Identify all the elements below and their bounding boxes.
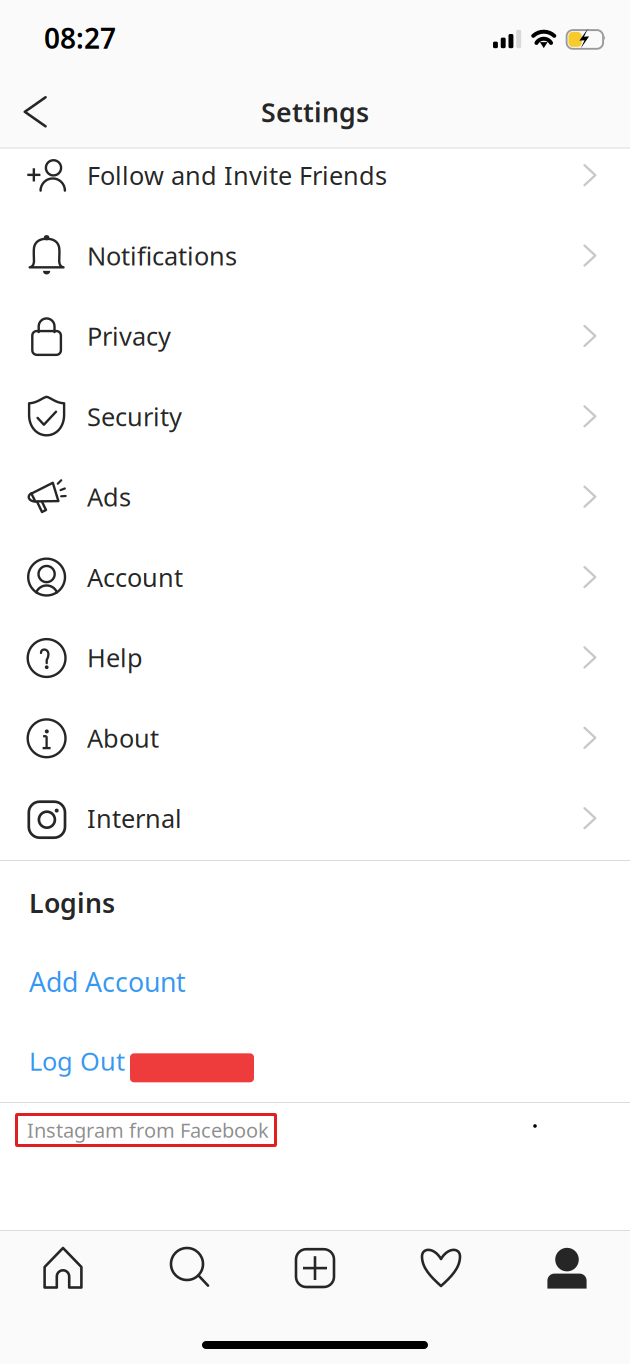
button[interactable]: Internal [0,778,630,858]
staticText: Account [87,560,183,594]
button[interactable]: Account [0,537,630,617]
staticText: Settings [261,94,369,130]
button[interactable]: Help [0,617,630,698]
button[interactable]: Activity [378,1246,504,1290]
button[interactable]: Search [126,1246,252,1290]
button[interactable]: Security [0,376,630,456]
button[interactable]: Back [14,88,62,136]
button[interactable]: Log Out [29,1038,254,1084]
button[interactable]: About [0,698,630,778]
staticText: About [87,721,159,755]
staticText: Notifications [87,239,237,272]
button[interactable]: Add Account [29,958,192,1005]
staticText: Add Account [29,964,186,999]
staticText: Logins [29,885,115,920]
button[interactable]: Notifications [0,215,630,296]
staticText: Ads [87,480,131,513]
staticText: Instagram from Facebook [27,1117,269,1143]
staticText: Log Out [29,1044,125,1078]
staticText: 08:27 [44,19,116,57]
staticText: Help [87,641,143,674]
staticText: Follow and Invite Friends [87,158,387,192]
staticText: Privacy [87,319,171,353]
button[interactable]: Profile [504,1246,630,1290]
staticText: Security [87,399,182,433]
button[interactable]: Ads [0,456,630,537]
staticText: Internal [87,801,182,835]
button[interactable]: Home [0,1246,126,1290]
button[interactable]: Follow and Invite Friends [0,135,630,215]
button[interactable]: Privacy [0,296,630,376]
button[interactable]: New Post [252,1246,378,1290]
